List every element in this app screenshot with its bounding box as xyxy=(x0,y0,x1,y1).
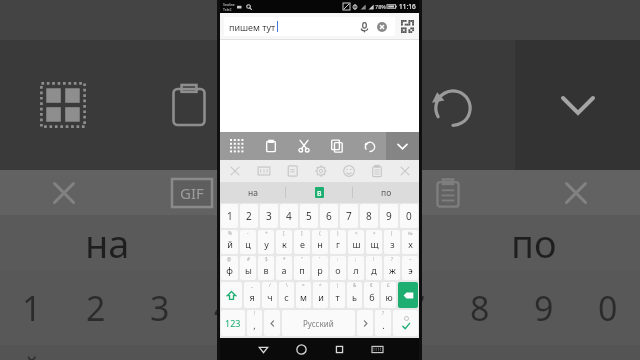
button[interactable]: Enter xyxy=(393,310,418,336)
button[interactable]: | xyxy=(330,282,345,308)
button[interactable]: Voice search xyxy=(356,19,372,35)
button[interactable]: Notes xyxy=(363,160,391,182)
button[interactable]: } xyxy=(330,230,346,254)
button[interactable]: Emoji xyxy=(335,160,363,182)
button[interactable]: ? xyxy=(384,256,400,280)
staticText: по xyxy=(381,187,392,199)
staticText: р xyxy=(317,264,323,276)
button[interactable]: : xyxy=(330,256,346,280)
button[interactable]: ^ xyxy=(313,282,328,308)
button[interactable]: Undo xyxy=(353,132,386,160)
button[interactable]: € xyxy=(364,282,379,308)
button[interactable]: * xyxy=(276,256,292,280)
staticText: ш xyxy=(352,238,361,250)
button[interactable]: Copy xyxy=(320,132,353,160)
button[interactable]: 123 xyxy=(221,310,245,336)
button[interactable]: Backspace xyxy=(398,282,418,308)
button[interactable]: ~ xyxy=(402,256,418,280)
staticText: 3 xyxy=(266,209,272,223)
button[interactable]: Sticker xyxy=(278,160,307,182)
button[interactable]: 7 xyxy=(340,204,358,228)
staticText: щ xyxy=(370,238,379,250)
button[interactable]: Recents xyxy=(320,338,358,360)
button[interactable]: Previous language xyxy=(264,310,280,336)
button[interactable]: Close xyxy=(220,160,249,182)
button[interactable]: - xyxy=(240,230,256,254)
button[interactable]: @ xyxy=(221,256,238,280)
staticText: 11:16 xyxy=(399,2,416,11)
button[interactable]: 6 xyxy=(320,204,338,228)
staticText: Русский xyxy=(303,318,334,329)
staticText: 1 xyxy=(227,209,233,223)
button[interactable]: Scan code xyxy=(399,18,416,35)
button[interactable]: [ xyxy=(276,230,292,254)
button[interactable]: 9 xyxy=(380,204,398,228)
button[interactable]: ! xyxy=(247,310,262,336)
button[interactable]: GIF xyxy=(249,160,278,182)
button[interactable]: + xyxy=(258,230,274,254)
button[interactable]: Hide keyboard xyxy=(358,338,396,360)
button[interactable]: ! xyxy=(366,256,382,280)
button[interactable]: $ xyxy=(258,256,274,280)
button[interactable]: _ xyxy=(244,282,260,308)
button[interactable]: 2 xyxy=(240,204,258,228)
button[interactable]: ' xyxy=(312,256,328,280)
staticText: " xyxy=(301,256,303,262)
button[interactable]: 4 xyxy=(280,204,298,228)
staticText: = xyxy=(302,282,305,288)
staticText: 7 xyxy=(406,285,426,331)
button[interactable]: Back xyxy=(244,338,282,360)
button[interactable]: / xyxy=(262,282,277,308)
button[interactable]: Themes xyxy=(220,132,254,160)
staticText: € xyxy=(370,282,373,288)
button[interactable]: £ xyxy=(381,282,396,308)
staticText: ? xyxy=(382,310,384,316)
button[interactable]: Clipboard xyxy=(254,132,287,160)
staticText: ! xyxy=(254,310,256,316)
button[interactable]: 3 xyxy=(260,204,278,228)
button[interactable]: & xyxy=(347,282,362,308)
button[interactable]: < xyxy=(348,230,364,254)
button[interactable]: Русский xyxy=(282,310,355,336)
button[interactable]: > xyxy=(366,230,382,254)
button[interactable]: пишем тут xyxy=(224,17,395,36)
button[interactable]: # xyxy=(240,256,256,280)
button[interactable]: % xyxy=(221,230,238,254)
button[interactable]: 1 xyxy=(221,204,238,228)
staticText: < xyxy=(355,230,358,236)
button[interactable]: ] xyxy=(294,230,310,254)
button[interactable]: { xyxy=(312,230,328,254)
button[interactable]: Settings xyxy=(307,160,335,182)
button[interactable]: Collapse xyxy=(386,132,419,160)
button[interactable]: Cut xyxy=(287,132,320,160)
button[interactable]: на xyxy=(220,182,285,203)
button[interactable]: № xyxy=(402,230,418,254)
button[interactable]: 5 xyxy=(300,204,318,228)
button[interactable]: ? xyxy=(375,310,391,336)
staticText: ж xyxy=(389,264,396,276)
button[interactable]: 8 xyxy=(360,204,378,228)
staticText: ы xyxy=(245,264,252,276)
staticText: № xyxy=(408,230,413,236)
staticText: 7 xyxy=(346,209,352,223)
button[interactable]: " xyxy=(294,256,310,280)
staticText: ( xyxy=(391,230,393,236)
staticText: | xyxy=(336,282,339,288)
button[interactable]: Next language xyxy=(357,310,373,336)
button[interactable]: Shift xyxy=(221,282,242,308)
button[interactable]: Clear xyxy=(374,19,390,35)
button[interactable]: в xyxy=(286,182,352,203)
button[interactable]: = xyxy=(296,282,311,308)
button[interactable]: More xyxy=(391,160,419,182)
button[interactable]: по xyxy=(353,182,419,203)
button[interactable]: \ xyxy=(279,282,294,308)
staticText: ' xyxy=(319,256,321,262)
staticText: } xyxy=(337,230,339,236)
button[interactable]: 0 xyxy=(400,204,418,228)
button[interactable]: ( xyxy=(384,230,400,254)
button[interactable]: Home xyxy=(282,338,320,360)
button[interactable]: ; xyxy=(348,256,364,280)
